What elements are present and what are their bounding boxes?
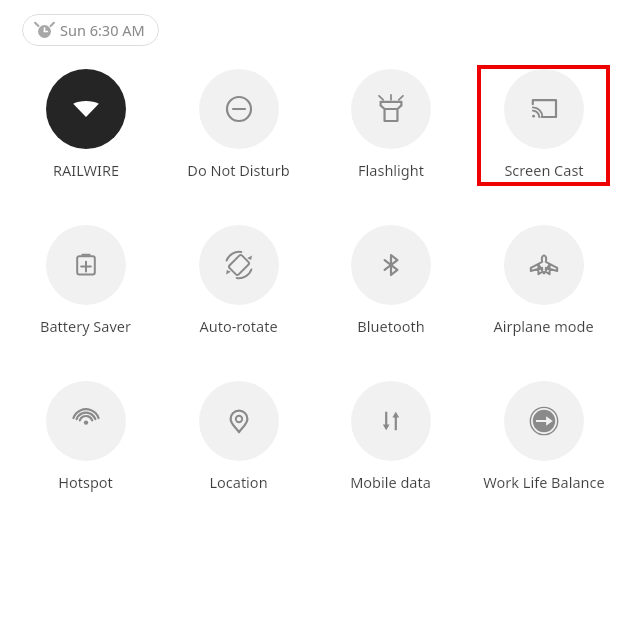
button[interactable]: Battery Saver <box>19 221 152 342</box>
staticText: Mobile data <box>350 472 431 492</box>
staticText: Airplane mode <box>493 316 594 336</box>
staticText: Battery Saver <box>40 316 131 336</box>
staticText: Bluetooth <box>357 316 425 336</box>
button[interactable]: Bluetooth <box>324 221 457 342</box>
staticText: Flashlight <box>358 160 424 180</box>
button[interactable]: Hotspot <box>19 377 152 498</box>
button[interactable]: Airplane mode <box>477 221 610 342</box>
staticText: Hotspot <box>58 472 113 492</box>
button[interactable]: Work Life Balance <box>477 377 610 498</box>
staticText: RAILWIRE <box>53 160 119 180</box>
button[interactable]: Mobile data <box>324 377 457 498</box>
button[interactable]: Flashlight <box>324 65 457 186</box>
button[interactable]: Screen Cast <box>477 65 610 186</box>
staticText: Sun 6:30 AM <box>60 20 145 40</box>
button[interactable]: Location <box>172 377 305 498</box>
staticText: Do Not Disturb <box>187 160 290 180</box>
staticText: Auto-rotate <box>199 316 278 336</box>
button[interactable]: Do Not Disturb <box>172 65 305 186</box>
button[interactable]: Auto-rotate <box>172 221 305 342</box>
button[interactable]: RAILWIRE <box>19 65 152 186</box>
button[interactable]: Sun 6:30 AM <box>22 14 159 46</box>
staticText: Location <box>209 472 268 492</box>
staticText: Work Life Balance <box>483 472 605 492</box>
staticText: Screen Cast <box>504 160 584 180</box>
